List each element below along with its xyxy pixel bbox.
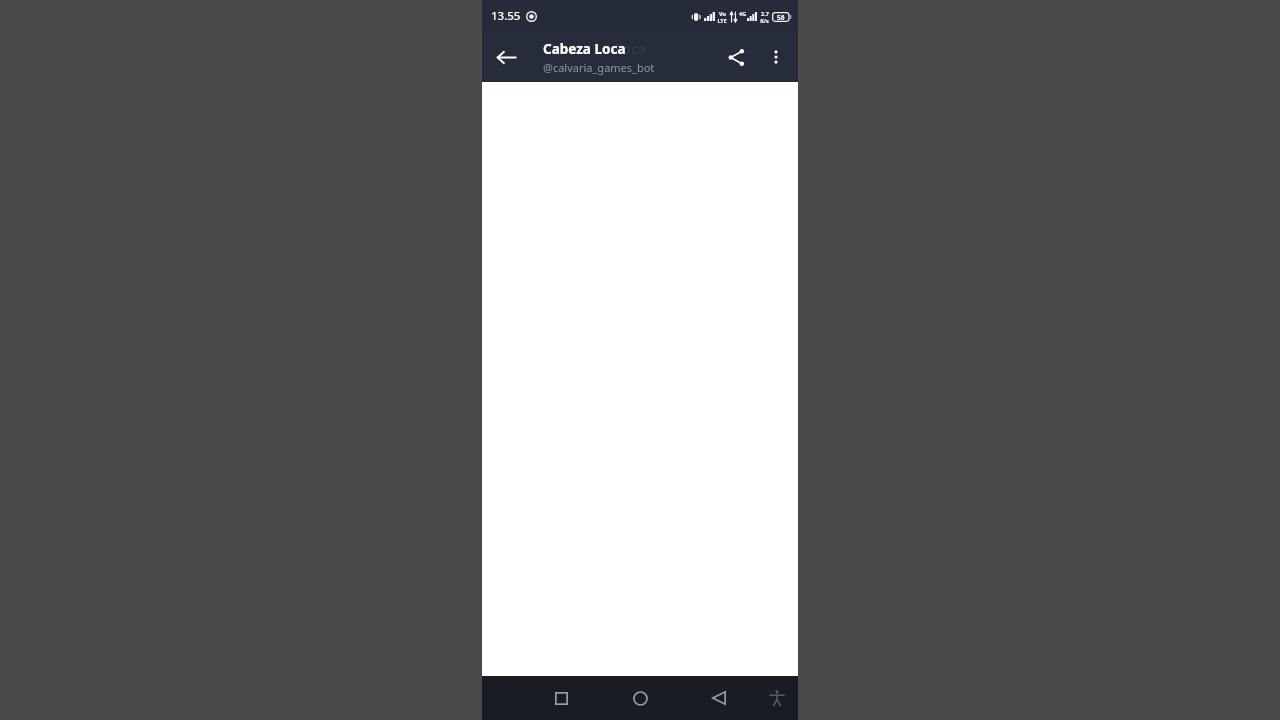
- button[interactable]: Recent apps: [539, 676, 583, 720]
- button[interactable]: Loca: [543, 40, 706, 75]
- staticText: 2.7: [761, 10, 769, 17]
- button[interactable]: Home: [618, 676, 662, 720]
- button[interactable]: Back: [697, 676, 741, 720]
- staticText: 56: [777, 13, 785, 22]
- staticText: 13.55: [491, 8, 521, 24]
- button[interactable]: Back: [486, 37, 526, 77]
- staticText: K/s: [760, 17, 769, 23]
- staticText: LTE: [717, 17, 727, 23]
- staticText: Vo: [719, 10, 726, 17]
- staticText: @calvaria_games_bot: [543, 60, 655, 75]
- staticText: Cabeza Loca: [543, 40, 626, 58]
- staticText: Loca: [615, 40, 647, 58]
- button[interactable]: Accessibility: [756, 676, 798, 720]
- button[interactable]: More options: [756, 37, 796, 77]
- button[interactable]: Share: [716, 37, 756, 77]
- staticText: 4G: [739, 10, 747, 17]
